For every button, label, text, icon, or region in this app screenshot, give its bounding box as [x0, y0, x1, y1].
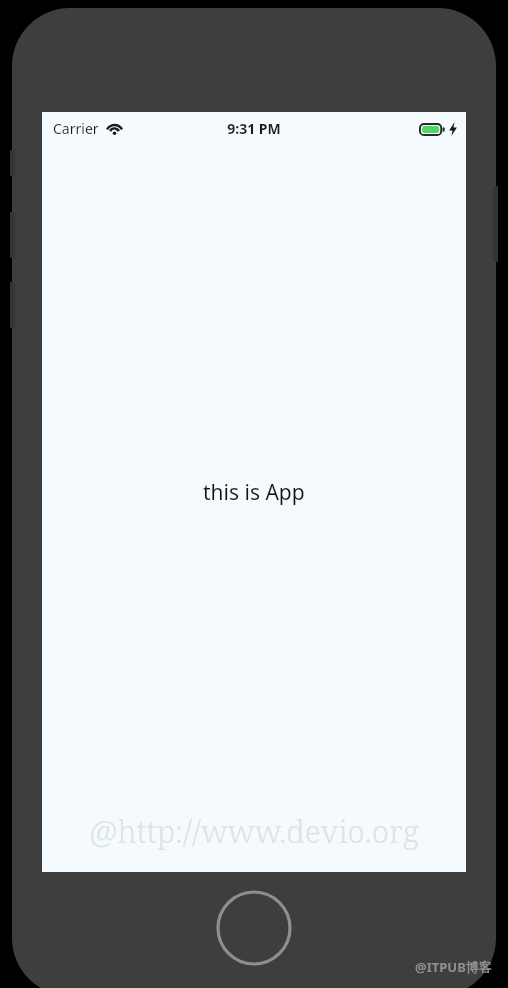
- staticText: this is App: [203, 478, 305, 507]
- staticText: Carrier: [53, 119, 99, 138]
- staticText: @http://www.devio.org: [89, 810, 419, 852]
- staticText: @ITPUB博客: [415, 958, 492, 976]
- button[interactable]: Home: [216, 890, 292, 966]
- staticText: 9:31 PM: [227, 119, 281, 138]
